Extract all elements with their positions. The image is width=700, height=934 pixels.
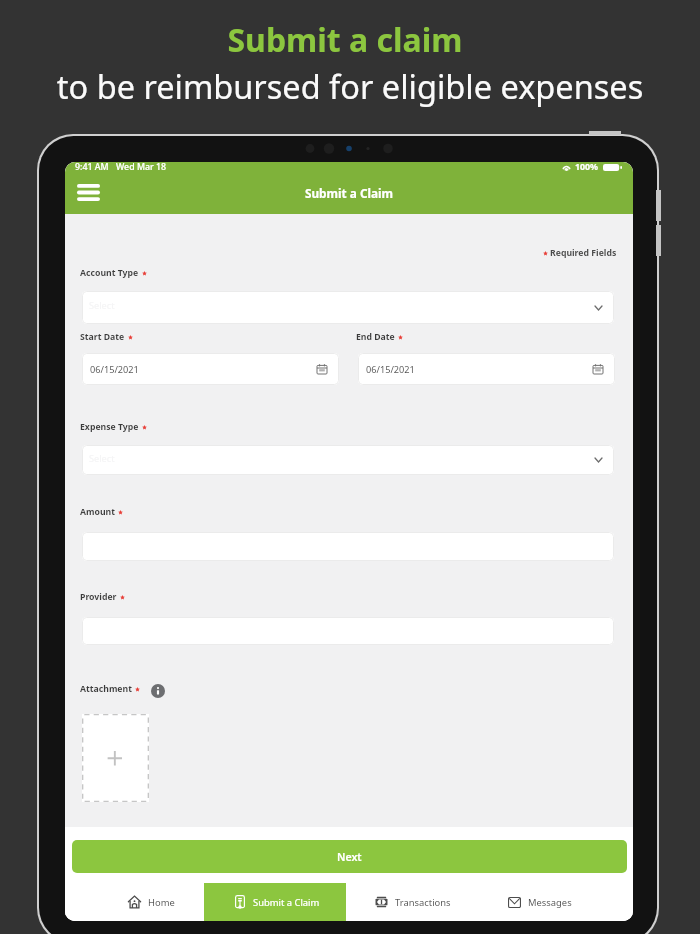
button[interactable]: Next [72, 840, 627, 873]
button[interactable]: 06/15/2021 [82, 353, 339, 385]
staticText: Home [148, 896, 175, 909]
button[interactable]: Select [82, 445, 614, 475]
button[interactable]: Open navigation menu [77, 181, 109, 203]
button[interactable]: Transactions [346, 883, 490, 921]
staticText: 9:41 AM [75, 162, 109, 173]
staticText: Account Type [80, 267, 139, 279]
staticText: Next [337, 850, 362, 864]
button[interactable]: 06/15/2021 [358, 353, 615, 385]
staticText: Expense Type [80, 421, 139, 433]
button[interactable] [82, 532, 614, 561]
staticText: Wed Mar 18 [116, 162, 167, 173]
button[interactable]: Attachment information [151, 684, 165, 698]
staticText: Required Fields [550, 247, 617, 259]
staticText: Amount [80, 506, 115, 518]
button[interactable]: Select [82, 291, 614, 324]
button[interactable]: Add attachment [82, 714, 149, 802]
staticText: Select [89, 299, 115, 312]
button[interactable]: Messages [489, 883, 632, 921]
staticText: Messages [528, 896, 572, 909]
staticText: Transactions [395, 896, 451, 909]
button[interactable] [82, 617, 614, 645]
staticText: to be reimbursed for eligible expenses [0, 64, 700, 108]
staticText: Provider [80, 591, 117, 603]
staticText: Submit a Claim [65, 185, 633, 201]
staticText: Select [89, 452, 115, 465]
staticText: End Date [356, 331, 395, 343]
button[interactable]: Home [65, 883, 204, 921]
button[interactable]: Submit a Claim [204, 883, 346, 921]
staticText: Attachment [80, 683, 132, 695]
staticText: Submit a Claim [253, 896, 320, 909]
staticText: Start Date [80, 331, 125, 343]
staticText: 100% [575, 162, 599, 173]
staticText: 06/15/2021 [90, 363, 139, 376]
staticText: 06/15/2021 [366, 363, 415, 376]
staticText: Submit a claim [0, 18, 695, 62]
